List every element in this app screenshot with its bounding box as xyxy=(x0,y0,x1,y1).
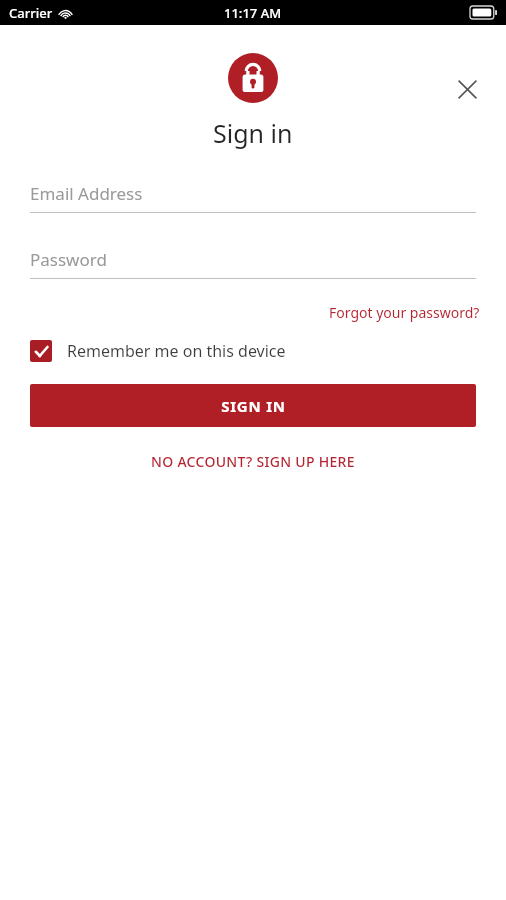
button[interactable]: Email Address xyxy=(30,179,476,213)
staticText: SIGN IN xyxy=(221,396,286,416)
staticText: NO ACCOUNT? SIGN UP HERE xyxy=(151,452,355,471)
staticText: Forgot your password? xyxy=(329,303,480,322)
button[interactable]: Forgot your password? xyxy=(327,300,482,325)
staticText: 11:17 AM xyxy=(224,4,282,22)
button[interactable]: Remember me on this device xyxy=(0,338,506,364)
button[interactable]: Password xyxy=(30,245,476,279)
staticText: Password xyxy=(30,248,107,271)
button[interactable]: SIGN IN xyxy=(30,384,476,427)
staticText: Email Address xyxy=(30,182,143,205)
staticText: Sign in xyxy=(213,116,293,150)
button[interactable]: Close xyxy=(447,69,487,109)
staticText: Remember me on this device xyxy=(67,340,286,362)
button[interactable]: NO ACCOUNT? SIGN UP HERE xyxy=(145,448,361,475)
staticText: Carrier xyxy=(9,4,53,22)
